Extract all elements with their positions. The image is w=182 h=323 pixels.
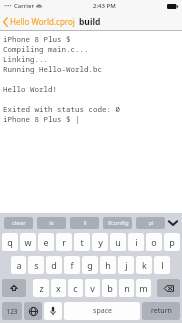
button[interactable]: ls — [37, 217, 66, 229]
button[interactable]: pi — [136, 217, 165, 229]
button[interactable]: r — [56, 233, 72, 251]
button[interactable]: Hello World.cproj — [0, 12, 79, 31]
staticText: q — [7, 236, 13, 248]
staticText: return — [151, 306, 172, 316]
button[interactable]: space — [64, 302, 140, 320]
staticText: Hello World! — [3, 84, 57, 94]
button[interactable]: s — [28, 256, 44, 274]
button[interactable]: o — [146, 233, 162, 251]
button[interactable]: f — [64, 256, 80, 274]
button[interactable]: 123 — [2, 302, 22, 320]
staticText: iPhone 8 Plus $ | — [3, 114, 80, 124]
button[interactable]: u — [110, 233, 126, 251]
button[interactable]: c — [68, 279, 83, 297]
staticText: space — [93, 306, 112, 316]
staticText: p — [169, 236, 175, 248]
button[interactable]: i — [128, 233, 144, 251]
staticText: clear — [12, 219, 26, 227]
button[interactable]: Next keyboard — [24, 302, 42, 320]
button[interactable]: g — [82, 256, 98, 274]
staticText: f — [70, 259, 74, 271]
staticText: iPhone 8 Plus $ — [3, 34, 71, 44]
staticText: l — [161, 259, 164, 271]
button[interactable]: Dictate — [44, 302, 62, 320]
staticText: n — [124, 282, 130, 294]
button[interactable]: return — [142, 302, 180, 320]
button[interactable]: w — [20, 233, 36, 251]
button[interactable]: m — [136, 279, 151, 297]
button[interactable]: h — [100, 256, 116, 274]
staticText: a — [16, 259, 22, 271]
staticText: u — [115, 236, 121, 248]
staticText: x — [56, 282, 61, 294]
staticText: t — [80, 236, 84, 248]
staticText: i — [135, 236, 138, 248]
button[interactable]: ifconfig — [103, 217, 132, 229]
staticText: build — [79, 16, 101, 28]
button[interactable]: ll — [70, 217, 99, 229]
button[interactable]: n — [119, 279, 134, 297]
button[interactable]: clear — [4, 217, 33, 229]
staticText: d — [51, 259, 57, 271]
button[interactable]: l — [154, 256, 170, 274]
button[interactable]: x — [51, 279, 66, 297]
staticText: j — [125, 259, 128, 271]
staticText: b — [107, 282, 113, 294]
staticText: Hello World.cproj — [10, 16, 75, 27]
button[interactable]: v — [85, 279, 100, 297]
button[interactable]: a — [11, 256, 26, 274]
staticText: ifconfig — [107, 219, 129, 227]
staticText: c — [73, 282, 78, 294]
button[interactable]: t — [74, 233, 90, 251]
staticText: Exited with status code: 0 — [3, 104, 120, 114]
staticText: r — [62, 236, 66, 248]
button[interactable]: j — [118, 256, 134, 274]
staticText: ls — [49, 219, 54, 227]
button[interactable]: Shift — [2, 279, 26, 297]
button[interactable]: Backspace — [157, 279, 180, 297]
staticText: k — [142, 259, 147, 271]
staticText: y — [98, 236, 103, 248]
staticText: o — [151, 236, 157, 248]
staticText: s — [34, 259, 39, 271]
staticText: w — [24, 236, 32, 248]
button[interactable]: p — [164, 233, 180, 251]
staticText: Linking... — [3, 54, 48, 64]
staticText: 123 — [6, 307, 18, 316]
button[interactable]: k — [136, 256, 152, 274]
staticText: h — [105, 259, 111, 271]
staticText: •••• — [4, 3, 12, 10]
button[interactable]: q — [2, 233, 18, 251]
staticText: e — [43, 236, 49, 248]
button[interactable]: d — [46, 256, 62, 274]
button[interactable]: y — [92, 233, 108, 251]
staticText: z — [39, 282, 44, 294]
staticText: Compiling main.c... — [3, 44, 89, 54]
staticText: pi — [148, 219, 154, 227]
staticText: v — [90, 282, 95, 294]
button[interactable]: Hide keyboard — [166, 216, 180, 230]
button[interactable]: z — [33, 279, 49, 297]
button[interactable]: b — [102, 279, 117, 297]
staticText: m — [139, 282, 148, 294]
staticText: 2:43 PM — [93, 2, 116, 10]
staticText: Running Hello-World.bc — [3, 64, 102, 74]
staticText: ll — [83, 219, 87, 227]
button[interactable]: e — [38, 233, 54, 251]
staticText: Carrier — [14, 2, 34, 10]
staticText: g — [87, 259, 93, 271]
